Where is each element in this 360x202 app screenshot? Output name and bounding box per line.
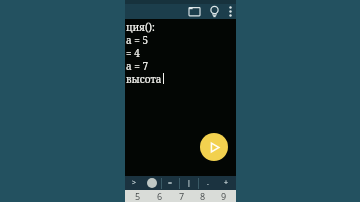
staticText: > bbox=[132, 178, 137, 188]
button[interactable]: 9 bbox=[213, 190, 234, 202]
staticText: 7 bbox=[179, 190, 185, 202]
button[interactable]: 7 bbox=[171, 190, 192, 202]
button[interactable]: Run bbox=[200, 133, 228, 161]
button[interactable]: . bbox=[198, 176, 217, 190]
staticText: = 4 bbox=[126, 46, 140, 59]
button[interactable]: | bbox=[179, 176, 198, 190]
button[interactable]: 6 bbox=[149, 190, 171, 202]
button[interactable]: More options bbox=[224, 4, 236, 19]
staticText: а = 5 bbox=[126, 33, 149, 46]
staticText: высота bbox=[126, 72, 162, 85]
staticText: ция(): bbox=[126, 20, 155, 33]
button[interactable]: Key bbox=[143, 176, 161, 190]
staticText: 6 bbox=[157, 190, 163, 202]
staticText: = bbox=[168, 178, 173, 188]
staticText: 5 bbox=[135, 190, 141, 202]
button[interactable]: 8 bbox=[192, 190, 213, 202]
staticText: 8 bbox=[200, 190, 206, 202]
staticText: + bbox=[224, 178, 229, 188]
staticText: 9 bbox=[221, 190, 227, 202]
staticText: а = 7 bbox=[126, 59, 149, 72]
staticText: | bbox=[187, 178, 191, 188]
staticText: . bbox=[207, 178, 209, 188]
button[interactable]: + bbox=[217, 176, 236, 190]
button[interactable]: 5 bbox=[127, 190, 149, 202]
button[interactable]: Open file bbox=[184, 4, 204, 19]
button[interactable]: > bbox=[125, 176, 143, 190]
button[interactable]: Hint bbox=[204, 4, 224, 19]
button[interactable]: = bbox=[161, 176, 179, 190]
